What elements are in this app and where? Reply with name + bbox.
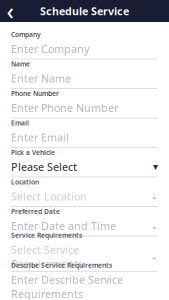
button[interactable]: Name <box>11 59 158 89</box>
button[interactable]: Location <box>11 177 158 207</box>
staticText: Select Service Requirements <box>11 242 83 271</box>
staticText: Schedule Service <box>40 4 129 18</box>
staticText: ⌄ <box>151 192 158 201</box>
staticText: Pick a Vehicle <box>11 148 55 157</box>
staticText: Enter Phone Number <box>11 101 118 115</box>
staticText: Company <box>11 30 41 39</box>
button[interactable]: Company <box>11 30 158 59</box>
staticText: ▼ <box>153 163 158 171</box>
staticText: Enter Name <box>11 71 71 86</box>
button[interactable]: Phone Number <box>11 89 158 118</box>
staticText: Preferred Date <box>11 207 60 216</box>
staticText: Phone Number <box>11 89 59 98</box>
staticText: Select Location <box>11 189 87 204</box>
staticText: Enter Date and Time <box>11 219 116 233</box>
staticText: Please Select <box>11 160 77 174</box>
staticText: ‹ <box>6 0 13 26</box>
button[interactable]: Service Requirements <box>11 236 158 266</box>
staticText: Email <box>11 118 29 127</box>
button[interactable]: Back <box>0 0 20 22</box>
staticText: Describe Service Requirements <box>11 261 112 270</box>
staticText: ⌄ <box>151 221 158 230</box>
button[interactable]: Preferred Date <box>11 207 158 236</box>
staticText: ⌄ <box>151 252 158 261</box>
button[interactable]: Describe Service Requirements <box>11 266 158 295</box>
staticText: Name <box>11 59 30 68</box>
staticText: Enter Company <box>11 42 89 56</box>
button[interactable]: Pick a Vehicle <box>11 148 158 177</box>
staticText: Enter Email <box>11 130 69 145</box>
button[interactable]: Email <box>11 118 158 148</box>
staticText: Location <box>11 177 39 186</box>
staticText: Enter Describe Service Requirements <box>11 272 123 300</box>
staticText: Service Requirements <box>11 231 82 240</box>
